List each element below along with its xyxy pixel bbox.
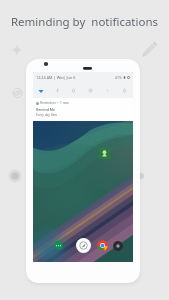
staticText: Reminding by notifications (0, 14, 169, 30)
button[interactable]: Battery saver (65, 83, 82, 98)
button[interactable]: Search (76, 238, 91, 253)
staticText: 12:24 AM | Wed, Jun 6 (36, 75, 76, 80)
staticText: Remind Me (36, 107, 55, 112)
button[interactable]: App icon (99, 148, 110, 159)
button[interactable]: Auto rotate (116, 83, 133, 98)
staticText: Every day 9am (36, 113, 58, 117)
button[interactable]: Camera (113, 241, 123, 251)
staticText: Reminders • 1 now (40, 101, 69, 105)
button[interactable]: Wi-Fi (33, 83, 49, 98)
button[interactable]: Bluetooth (49, 83, 65, 98)
button[interactable]: Reminders • 1 now (33, 98, 133, 121)
staticText: 41% (115, 75, 122, 80)
button[interactable]: Messages (54, 241, 63, 250)
button[interactable]: Do not disturb (82, 83, 99, 98)
button[interactable]: Chrome (97, 240, 108, 251)
